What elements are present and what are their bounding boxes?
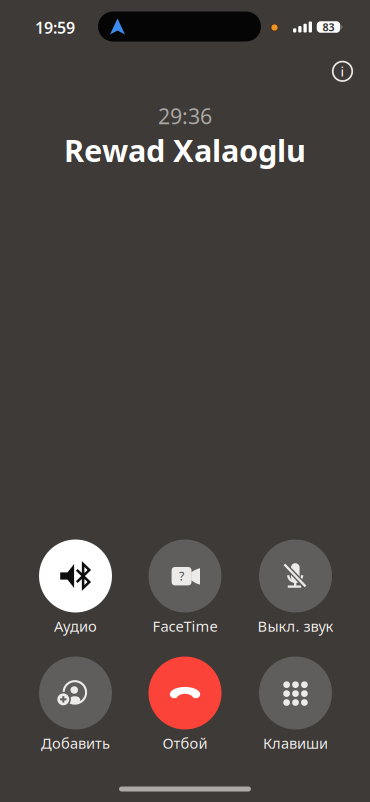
staticText: i	[340, 62, 344, 80]
staticText: Добавить	[41, 733, 110, 753]
staticText: Отбой	[162, 733, 207, 753]
staticText: FaceTime	[152, 616, 217, 636]
button[interactable]: Добавить	[22, 656, 128, 750]
staticText: Клавиши	[263, 733, 328, 753]
button[interactable]: Клавиши	[242, 656, 348, 750]
button[interactable]: Выкл. звук	[242, 539, 348, 633]
button[interactable]: Отбой	[132, 656, 238, 750]
staticText: Rewad Xalaoglu	[64, 130, 306, 170]
staticText: 83	[322, 20, 334, 34]
staticText: ?	[179, 568, 184, 584]
staticText: Аудио	[54, 616, 97, 636]
staticText: Выкл. звук	[257, 616, 333, 636]
button[interactable]: ?	[132, 539, 238, 633]
staticText: 29:36	[158, 102, 212, 130]
button[interactable]: Аудио	[22, 539, 128, 633]
staticText: 19:59	[35, 17, 75, 38]
button[interactable]: Call details	[322, 51, 362, 91]
